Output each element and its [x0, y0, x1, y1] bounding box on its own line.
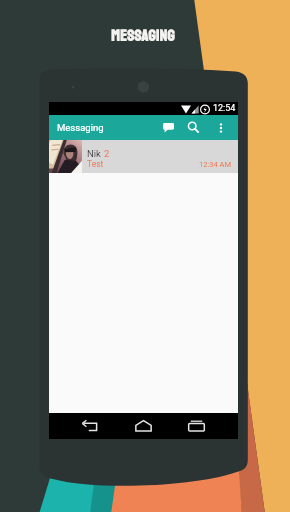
- staticText: 12:34 AM: [199, 160, 231, 169]
- staticText: 12:54: [213, 103, 236, 114]
- button[interactable]: Recents: [170, 413, 223, 439]
- staticText: MESSAGING: [111, 26, 175, 46]
- button[interactable]: Nik: [49, 140, 238, 173]
- button[interactable]: Home: [117, 413, 170, 439]
- button[interactable]: New message: [156, 115, 181, 140]
- button[interactable]: Search: [181, 115, 206, 140]
- button[interactable]: Back: [64, 413, 117, 439]
- staticText: Nik: [87, 148, 104, 159]
- button[interactable]: More options: [206, 115, 236, 140]
- staticText: Test: [87, 159, 104, 169]
- staticText: Messaging: [57, 122, 104, 133]
- staticText: 2: [104, 148, 110, 159]
